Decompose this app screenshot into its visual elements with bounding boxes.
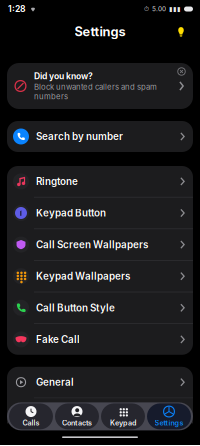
button[interactable]: Did you know?: [7, 63, 193, 109]
staticText: Keypad Wallpapers: [36, 270, 130, 282]
staticText: Contacts: [62, 418, 92, 427]
staticText: Keypad Button: [36, 207, 106, 219]
button[interactable]: General: [7, 367, 193, 398]
staticText: Call Button Style: [36, 302, 115, 314]
button[interactable]: Ringtone: [7, 166, 193, 197]
staticText: Settings: [154, 418, 183, 427]
button[interactable]: Settings: [147, 403, 191, 429]
button[interactable]: Call Button Style: [7, 292, 193, 323]
button[interactable]: Keypad Wallpapers: [7, 261, 193, 292]
button[interactable]: Tips: [173, 23, 189, 39]
staticText: ▮▮▮: [169, 5, 181, 13]
staticText: 1:28: [8, 4, 26, 14]
staticText: Did you know?: [34, 71, 93, 81]
button[interactable]: Calls: [9, 403, 53, 429]
button[interactable]: Contacts: [55, 403, 99, 429]
staticText: Keypad: [110, 418, 136, 427]
staticText: Calls: [22, 418, 39, 427]
staticText: 5.00: [152, 5, 166, 13]
staticText: Settings: [74, 24, 125, 39]
button[interactable]: Call Screen Wallpapers: [7, 229, 193, 260]
staticText: ⏱: [144, 6, 149, 12]
staticText: Block unwanted callers and spam numbers: [34, 82, 157, 101]
button[interactable]: Keypad Button: [7, 198, 193, 228]
staticText: Fake Call: [36, 333, 80, 345]
staticText: General: [36, 376, 74, 388]
button[interactable]: Keypad: [101, 403, 145, 429]
staticText: Search by number: [36, 130, 123, 142]
staticText: Ringtone: [36, 175, 78, 187]
button[interactable]: Fake Call: [7, 324, 193, 355]
button[interactable]: Search by number: [7, 121, 193, 152]
staticText: Call Screen Wallpapers: [36, 239, 148, 250]
